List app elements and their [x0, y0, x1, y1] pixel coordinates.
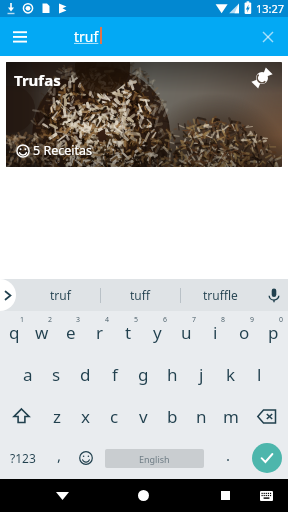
staticText: 5 Receitas: [33, 142, 93, 159]
button[interactable]: b: [158, 395, 187, 437]
button[interactable]: v: [129, 395, 158, 437]
staticText: d: [80, 363, 91, 386]
button[interactable]: More suggestions: [0, 279, 16, 311]
button[interactable]: j: [187, 353, 216, 395]
button[interactable]: Emoji: [73, 437, 99, 479]
button[interactable]: Back: [36, 479, 88, 512]
button[interactable]: l: [245, 353, 274, 395]
staticText: 9: [250, 315, 255, 325]
button[interactable]: a: [14, 353, 42, 395]
button[interactable]: f: [100, 353, 129, 395]
button[interactable]: Backspace: [245, 395, 288, 437]
staticText: 3: [76, 315, 81, 325]
staticText: t: [125, 321, 132, 344]
staticText: 8: [221, 315, 226, 325]
button[interactable]: d: [71, 353, 100, 395]
button[interactable]: tuff: [101, 279, 180, 311]
button[interactable]: y: [143, 311, 172, 353]
button[interactable]: w: [28, 311, 56, 353]
button[interactable]: c: [100, 395, 129, 437]
staticText: 6: [163, 315, 168, 325]
button[interactable]: English: [105, 449, 204, 468]
staticText: y: [153, 321, 162, 344]
staticText: 2: [48, 315, 53, 325]
button[interactable]: q: [0, 311, 28, 353]
staticText: x: [81, 405, 90, 428]
button[interactable]: p: [259, 311, 288, 353]
staticText: English: [139, 453, 170, 465]
staticText: 0: [279, 315, 284, 325]
button[interactable]: m: [216, 395, 245, 437]
button[interactable]: ?123: [0, 437, 45, 479]
button[interactable]: x: [71, 395, 100, 437]
button[interactable]: .: [210, 437, 246, 479]
button[interactable]: Trufas: [6, 62, 282, 167]
staticText: w: [35, 321, 49, 344]
staticText: r: [96, 321, 104, 344]
staticText: e: [66, 321, 76, 344]
staticText: tuff: [130, 287, 151, 303]
button[interactable]: r: [85, 311, 114, 353]
staticText: n: [196, 405, 207, 428]
staticText: truf: [50, 287, 71, 303]
staticText: 4: [105, 315, 110, 325]
button[interactable]: Recents: [201, 479, 249, 512]
staticText: ,: [57, 445, 62, 465]
button[interactable]: truffle: [181, 279, 260, 311]
staticText: a: [23, 363, 33, 386]
button[interactable]: Home: [117, 479, 169, 512]
button[interactable]: z: [42, 395, 71, 437]
staticText: h: [167, 363, 178, 386]
staticText: z: [53, 405, 61, 428]
staticText: truf: [74, 27, 99, 46]
button[interactable]: e: [56, 311, 85, 353]
button[interactable]: u: [172, 311, 201, 353]
button[interactable]: n: [187, 395, 216, 437]
button[interactable]: Switch keyboard: [249, 479, 283, 512]
staticText: q: [9, 321, 20, 344]
staticText: ?123: [10, 450, 36, 466]
staticText: 1: [20, 315, 25, 325]
staticText: b: [167, 405, 178, 428]
staticText: l: [257, 363, 262, 386]
staticText: .: [226, 445, 231, 465]
button[interactable]: ,: [45, 437, 73, 479]
button[interactable]: i: [201, 311, 230, 353]
button[interactable]: s: [42, 353, 71, 395]
button[interactable]: Shift: [0, 395, 42, 437]
staticText: v: [139, 405, 148, 428]
staticText: k: [226, 363, 236, 386]
staticText: 7: [192, 315, 197, 325]
staticText: 5: [134, 315, 139, 325]
staticText: o: [239, 321, 250, 344]
staticText: p: [268, 321, 279, 344]
button[interactable]: Menu: [0, 17, 40, 56]
button[interactable]: Enter: [246, 437, 288, 479]
staticText: g: [138, 363, 149, 386]
button[interactable]: Clear search: [248, 17, 288, 56]
staticText: c: [110, 405, 119, 428]
staticText: j: [199, 363, 204, 386]
button[interactable]: g: [129, 353, 158, 395]
button[interactable]: o: [230, 311, 259, 353]
staticText: i: [213, 321, 218, 344]
staticText: f: [112, 363, 118, 386]
button[interactable]: h: [158, 353, 187, 395]
staticText: truffle: [203, 287, 238, 303]
staticText: 13:27: [256, 1, 285, 16]
button[interactable]: truf: [20, 279, 100, 311]
staticText: u: [181, 321, 192, 344]
staticText: s: [52, 363, 61, 386]
button[interactable]: k: [216, 353, 245, 395]
button[interactable]: t: [114, 311, 143, 353]
staticText: m: [223, 405, 239, 428]
staticText: Trufas: [14, 70, 61, 90]
button[interactable]: Voice input: [260, 279, 288, 311]
